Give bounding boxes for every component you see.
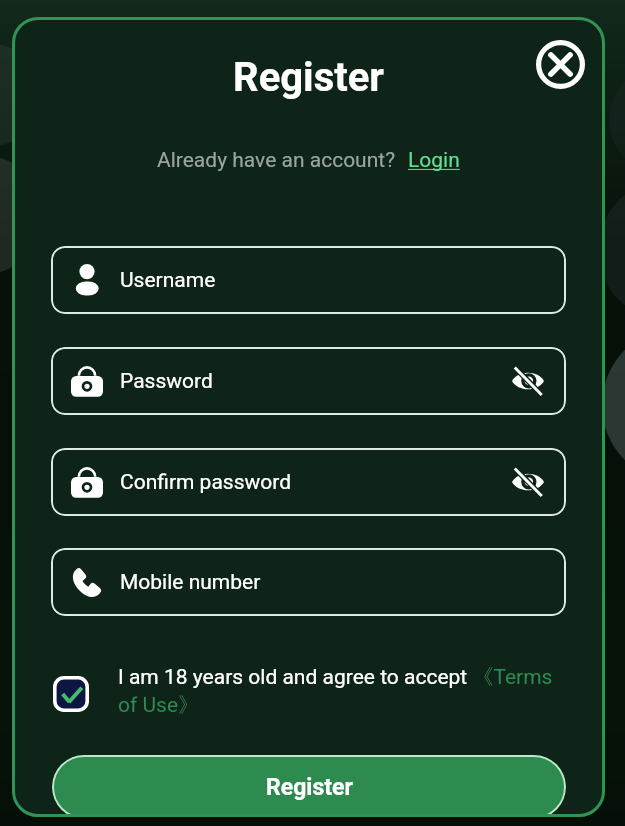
staticText: Register	[266, 774, 353, 801]
staticText: Confirm password	[120, 470, 292, 495]
staticText: I am 18 years old and agree to accept 《T…	[118, 664, 560, 719]
button[interactable]: Toggle password visibility	[510, 464, 546, 500]
button[interactable]: I am 18 years old and agree to accept Te…	[52, 675, 89, 712]
button[interactable]: Toggle password visibility	[510, 363, 546, 399]
staticText: Username	[120, 268, 216, 293]
staticText: Already have an account?	[157, 148, 396, 173]
button[interactable]: Mobile number	[51, 548, 566, 616]
button[interactable]: Username	[51, 246, 566, 314]
button[interactable]: Confirm password	[51, 448, 566, 516]
staticText: Mobile number	[120, 570, 261, 595]
button[interactable]: Login	[408, 148, 460, 173]
staticText: Register	[233, 54, 384, 101]
button[interactable]: Close	[534, 38, 587, 91]
button[interactable]: Password	[51, 347, 566, 415]
staticText: Login	[408, 148, 460, 173]
button[interactable]: Register	[52, 755, 566, 817]
staticText: Password	[120, 369, 213, 394]
